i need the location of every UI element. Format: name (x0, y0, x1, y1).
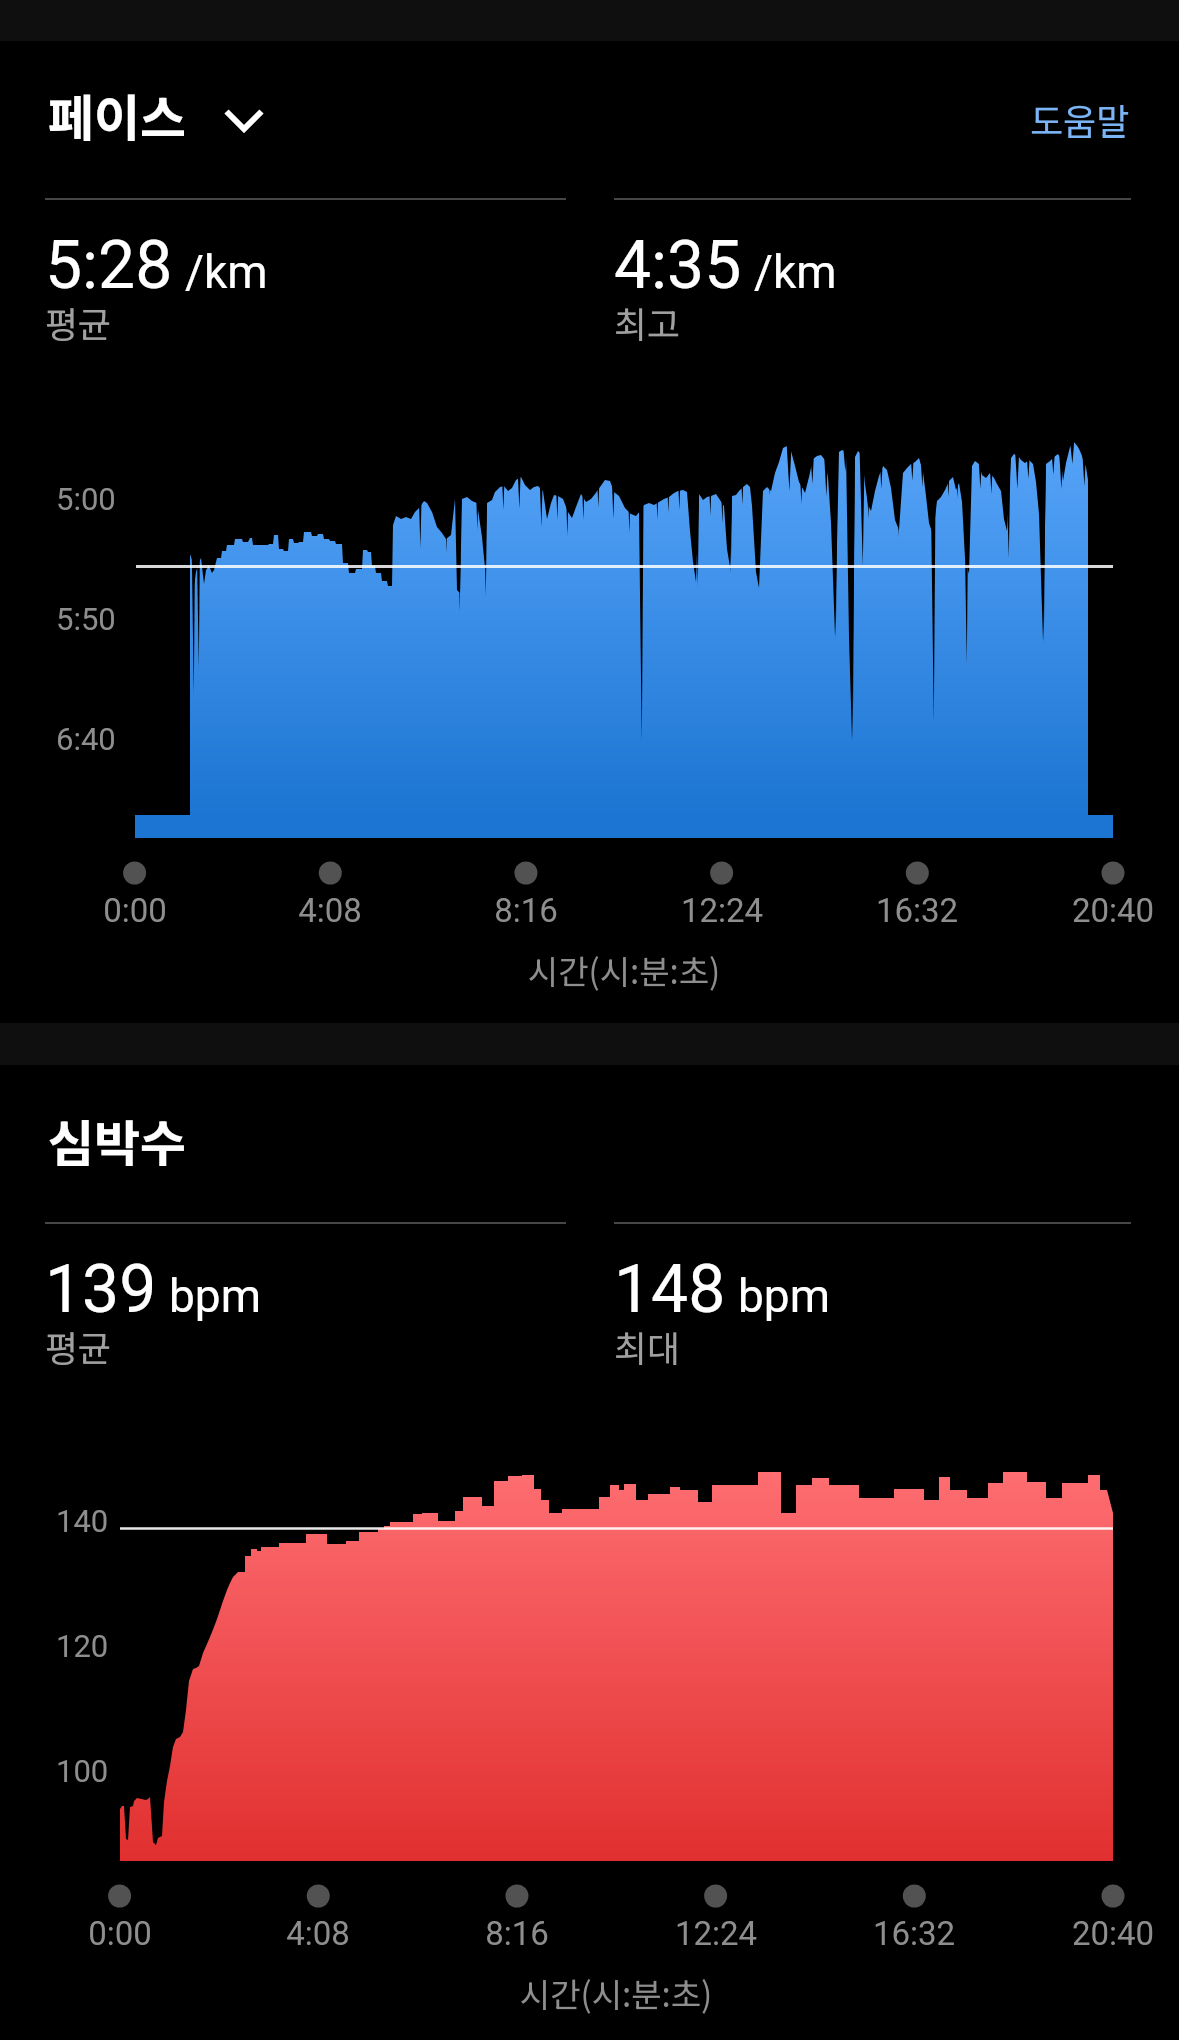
staticText: 페이스 (48, 79, 186, 151)
button[interactable]: Heart rate chart (120, 1460, 1113, 1862)
staticText: 20:40 (1023, 891, 1179, 930)
staticText: 148 (614, 1251, 726, 1328)
staticText: 최대 (614, 1320, 681, 1372)
staticText: 0:00 (45, 891, 225, 930)
staticText: 4:08 (240, 891, 420, 930)
staticText: 120 (56, 1628, 109, 1664)
staticText: 12:24 (626, 1914, 806, 1953)
staticText: 5:50 (56, 601, 116, 637)
staticText: 도움말 (1030, 93, 1130, 145)
button[interactable]: 심박수 (42, 1098, 192, 1182)
staticText: 5:28 (45, 227, 173, 304)
button[interactable]: 도움말 (1022, 85, 1138, 153)
staticText: 시간(시:분:초) (424, 946, 824, 994)
staticText: /km (185, 245, 268, 299)
staticText: 8:16 (436, 891, 616, 930)
staticText: 20:40 (1023, 1914, 1179, 1953)
staticText: 16:32 (824, 1914, 1004, 1953)
staticText: 심박수 (48, 1104, 186, 1176)
staticText: 평균 (45, 1320, 112, 1372)
staticText: 5:00 (56, 481, 116, 517)
other: Change chart type (224, 109, 264, 132)
staticText: 16:32 (827, 891, 1007, 930)
staticText: bpm (738, 1269, 830, 1323)
staticText: 8:16 (427, 1914, 607, 1953)
staticText: 시간(시:분:초) (416, 1969, 816, 2017)
staticText: /km (754, 245, 837, 299)
staticText: 139 (45, 1251, 157, 1328)
button[interactable]: 페이스 (42, 73, 276, 157)
staticText: 평균 (45, 296, 112, 348)
staticText: 100 (56, 1753, 109, 1789)
button[interactable]: Pace chart (135, 430, 1113, 839)
staticText: 4:08 (228, 1914, 408, 1953)
staticText: 0:00 (30, 1914, 210, 1953)
staticText: 최고 (614, 296, 681, 348)
staticText: 12:24 (632, 891, 812, 930)
staticText: 140 (56, 1503, 109, 1539)
staticText: bpm (169, 1269, 261, 1323)
staticText: 6:40 (56, 721, 116, 757)
staticText: 4:35 (614, 227, 742, 304)
